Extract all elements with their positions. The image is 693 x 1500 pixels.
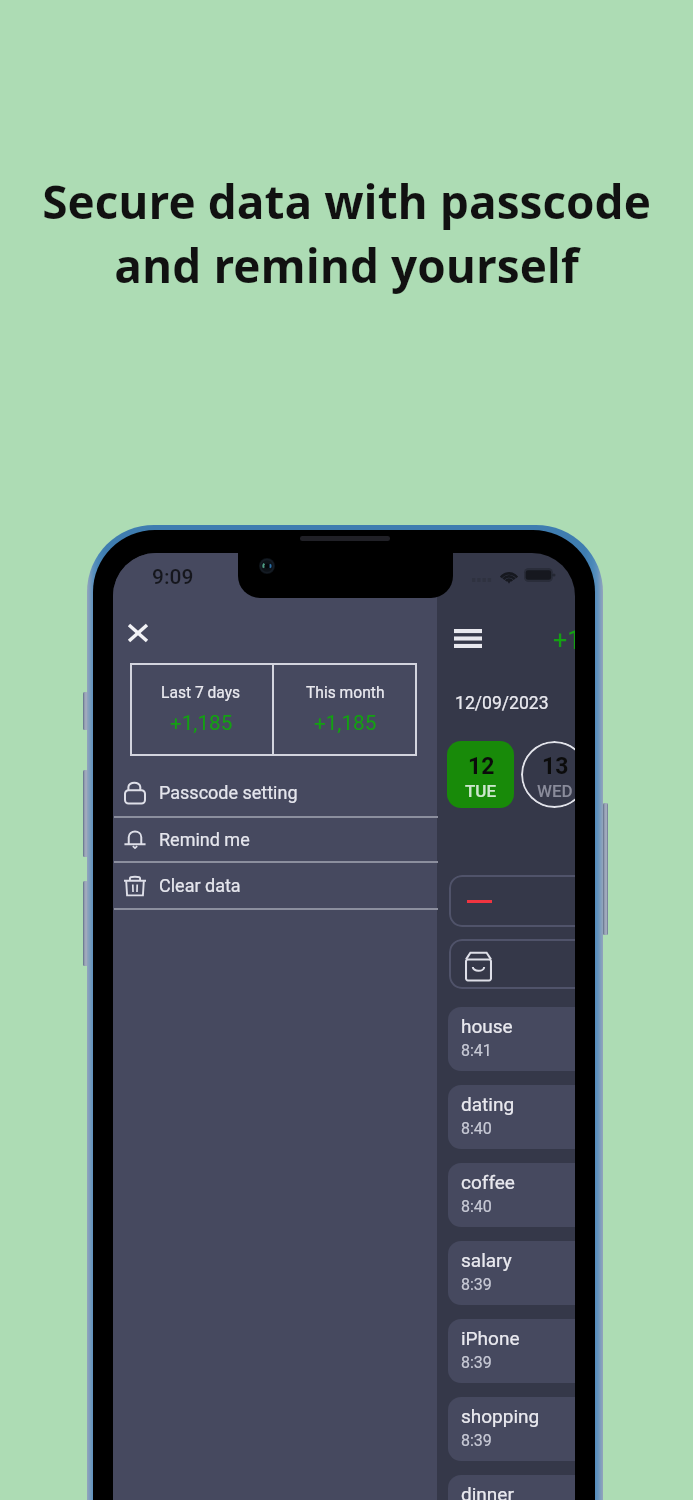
staticText: Secure data with passcode and remind you… — [42, 170, 651, 296]
button[interactable]: shopping — [448, 1397, 575, 1461]
staticText: 8:39 — [461, 1353, 492, 1372]
staticText: This month — [306, 684, 385, 702]
button[interactable]: Open menu — [453, 624, 483, 652]
staticText: Clear data — [159, 875, 241, 896]
staticText: Remind me — [159, 829, 250, 850]
staticText: iPhone — [461, 1327, 520, 1349]
staticText: 8:41 — [461, 1041, 492, 1060]
staticText: Passcode setting — [159, 782, 298, 803]
button[interactable]: 13 — [521, 741, 575, 808]
staticText: 9:09 — [152, 565, 194, 590]
button[interactable]: This month — [274, 663, 417, 756]
staticText: +1,185 — [314, 711, 377, 735]
button[interactable]: coffee — [448, 1163, 575, 1227]
staticText: 12 — [468, 753, 495, 780]
staticText: +1,185 — [170, 711, 233, 735]
staticText: 12/09/2023 — [455, 693, 549, 714]
button[interactable]: Remind me — [113, 818, 437, 861]
button[interactable]: house — [448, 1007, 575, 1071]
button[interactable]: dating — [448, 1085, 575, 1149]
staticText: 8:39 — [461, 1275, 492, 1294]
staticText: TUE — [465, 781, 497, 801]
button[interactable]: iPhone — [448, 1319, 575, 1383]
button[interactable]: dinner — [448, 1475, 575, 1500]
staticText: dating — [461, 1093, 515, 1115]
staticText: house — [461, 1015, 513, 1037]
button[interactable]: Passcode setting — [113, 768, 437, 816]
staticText: 8:40 — [461, 1197, 492, 1216]
button[interactable]: Close — [122, 617, 154, 649]
button[interactable]: salary — [448, 1241, 575, 1305]
button[interactable] — [449, 939, 575, 989]
staticText: dinner — [461, 1483, 514, 1500]
button[interactable] — [449, 875, 575, 927]
staticText: coffee — [461, 1171, 515, 1193]
staticText: salary — [461, 1249, 512, 1271]
button[interactable]: Clear data — [113, 863, 437, 908]
button[interactable]: 12 — [447, 741, 514, 808]
staticText: Last 7 days — [161, 684, 241, 702]
staticText: 8:40 — [461, 1119, 492, 1138]
staticText: WED — [537, 781, 573, 801]
staticText: +1,185 — [553, 626, 575, 655]
staticText: 8:39 — [461, 1431, 492, 1450]
staticText: 13 — [542, 753, 569, 780]
staticText: shopping — [461, 1405, 540, 1427]
button[interactable]: Last 7 days — [130, 663, 272, 756]
